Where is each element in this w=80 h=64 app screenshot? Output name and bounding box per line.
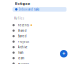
staticText: Recents [18,23,29,27]
staticText: Shared [18,29,27,32]
staticText: My files [14,17,24,20]
staticText: Archive [18,45,28,49]
button[interactable]: Recents [12,22,66,28]
button[interactable]: Projects [12,39,66,44]
button[interactable]: Compose [60,50,67,57]
button[interactable]: Team [12,55,66,61]
staticText: Inbox and tasks [19,8,39,11]
staticText: Workspace [14,2,30,6]
staticText: Starred [18,34,27,38]
button[interactable]: Starred [12,33,66,39]
button[interactable]: Inbox and tasks [12,7,66,12]
staticText: Settings [18,62,29,64]
button[interactable]: Settings [12,61,66,64]
staticText: Projects [18,40,29,43]
staticText: Team [18,56,24,60]
button[interactable]: Archive [12,44,66,50]
staticText: + [62,50,65,57]
staticText: Trash [18,51,24,54]
button[interactable]: Shared [12,28,66,33]
button[interactable]: Trash [12,50,66,55]
